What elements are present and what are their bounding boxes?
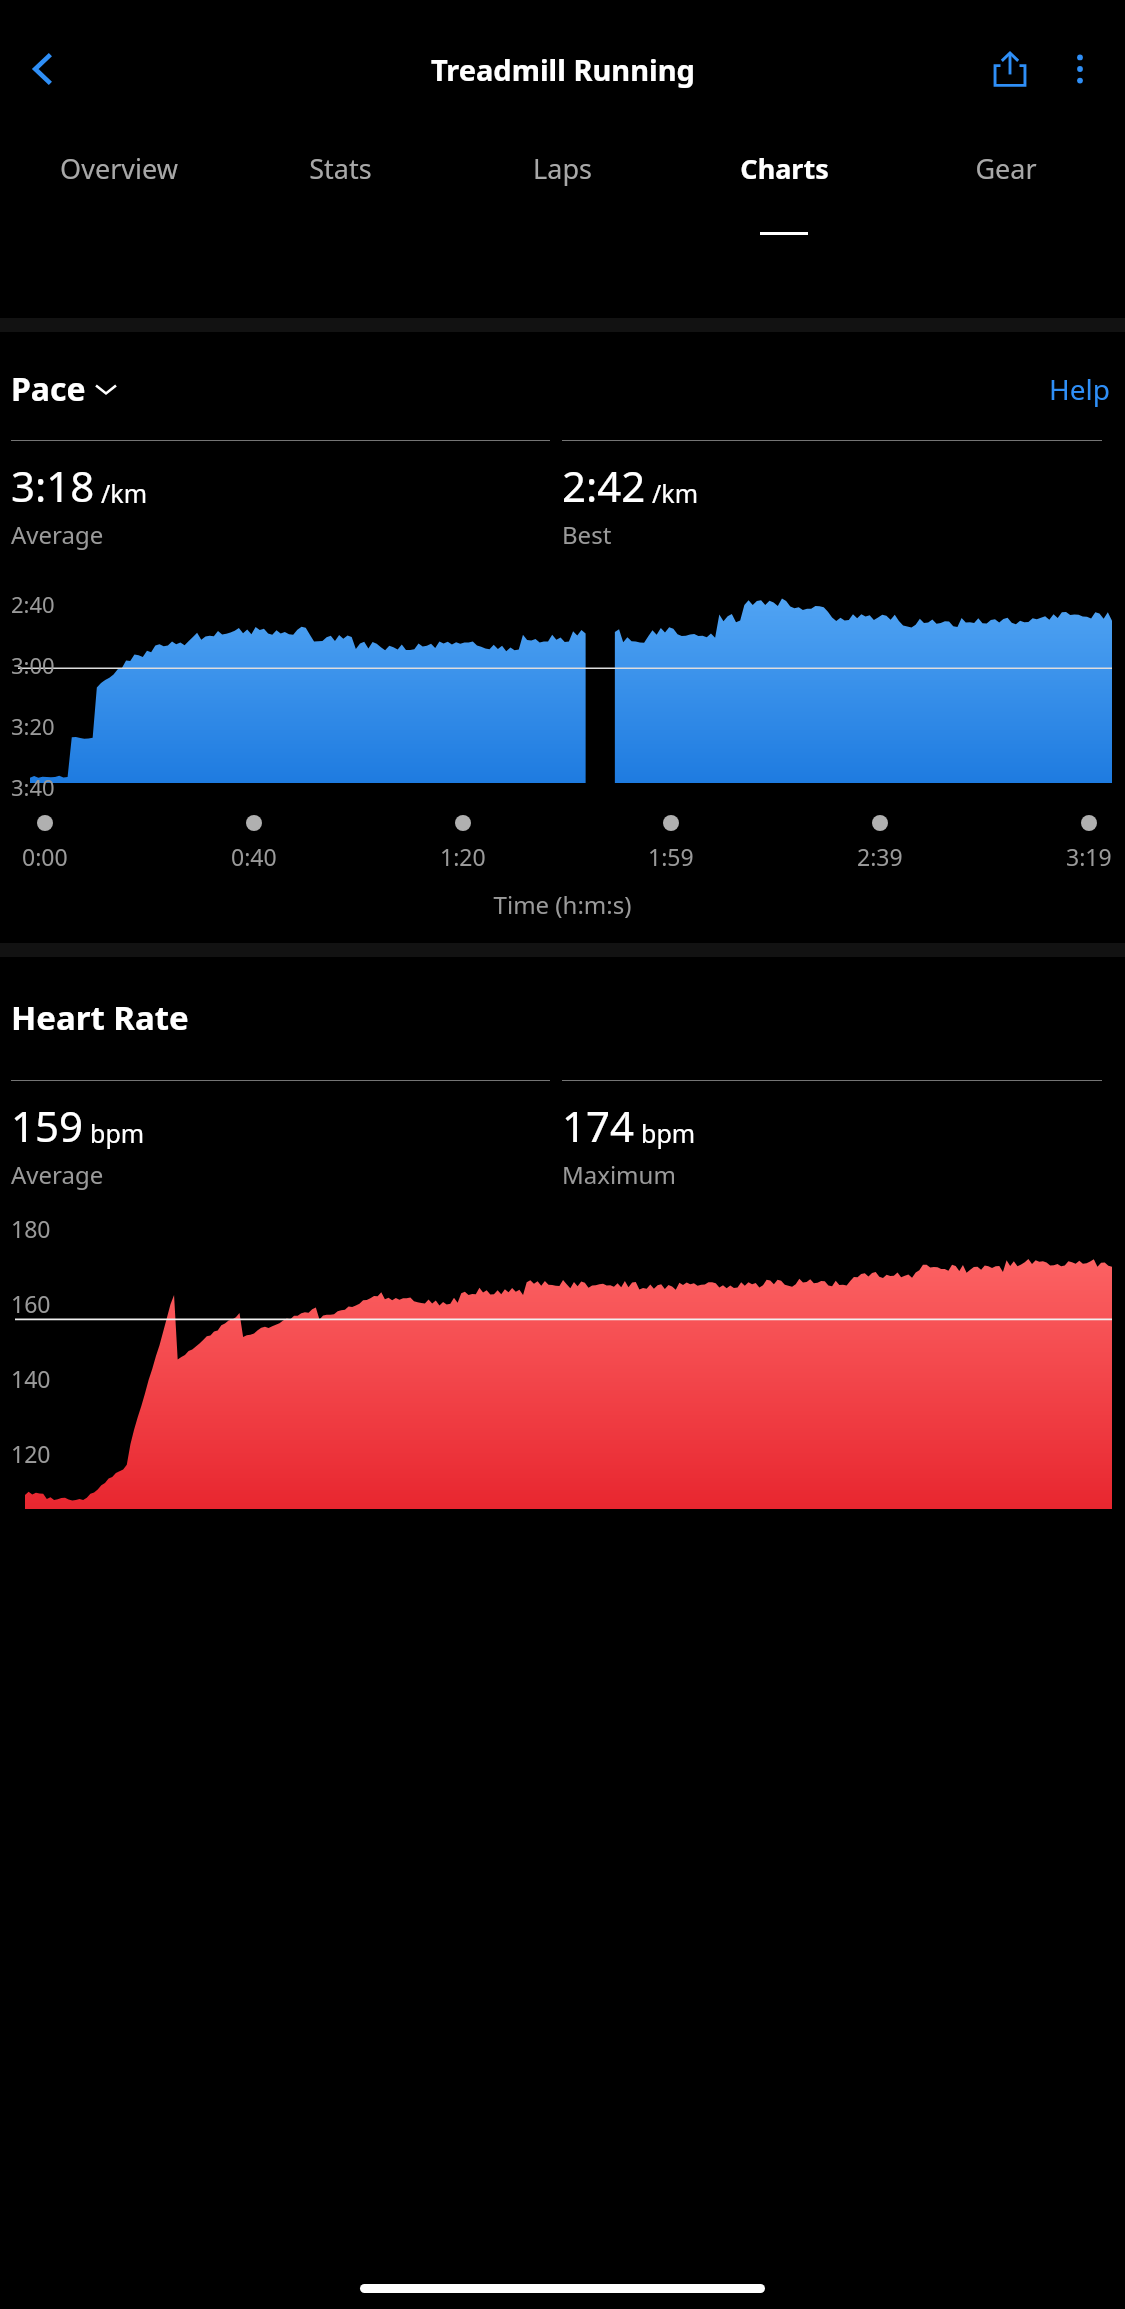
staticText: bpm — [641, 1116, 696, 1150]
button[interactable]: Gear — [895, 150, 1117, 232]
staticText: 3:18 — [11, 457, 95, 514]
staticText: bpm — [90, 1116, 145, 1150]
staticText: Help — [1049, 370, 1110, 408]
staticText: 3:40 — [11, 772, 55, 802]
staticText: Laps — [533, 150, 592, 187]
staticText: Maximum — [562, 1158, 676, 1191]
staticText: 2:39 — [857, 841, 903, 872]
staticText: 0:00 — [22, 841, 68, 872]
staticText: /km — [652, 476, 699, 510]
staticText: Stats — [309, 150, 372, 187]
staticText: Average — [11, 1158, 104, 1191]
button[interactable] — [92, 128, 295, 318]
staticText: 180 — [11, 1213, 51, 1244]
staticText: 2:42 — [562, 457, 646, 514]
staticText: 3:20 — [11, 711, 55, 741]
staticText: 174 — [562, 1097, 635, 1154]
staticText: Charts — [740, 150, 829, 187]
staticText: Gear — [975, 150, 1037, 187]
staticText: 3:19 — [1066, 841, 1112, 872]
button[interactable] — [154, 128, 357, 318]
staticText: 159 — [11, 1097, 84, 1154]
staticText: Treadmill Running — [431, 50, 695, 89]
button[interactable]: Overview — [8, 150, 229, 232]
staticText: 160 — [11, 1288, 51, 1319]
staticText: /km — [101, 476, 148, 510]
staticText: Heart Rate — [11, 995, 189, 1040]
button[interactable]: Laps — [451, 150, 673, 232]
staticText: 120 — [11, 1438, 51, 1469]
button[interactable]: Stats — [229, 150, 451, 232]
button[interactable]: Help — [1045, 366, 1114, 412]
staticText: Time (h:m:s) — [0, 888, 1125, 921]
staticText: 2:40 — [11, 589, 55, 619]
staticText: Best — [562, 518, 612, 551]
button[interactable]: More options — [1045, 34, 1115, 104]
staticText: 140 — [11, 1363, 51, 1394]
button[interactable] — [302, 128, 505, 318]
button[interactable]: Back — [8, 33, 80, 105]
staticText: Overview — [60, 150, 178, 187]
staticText: 1:20 — [440, 841, 486, 872]
staticText: Pace — [11, 367, 86, 411]
button[interactable]: Charts — [673, 150, 895, 235]
button[interactable]: Pace — [11, 367, 116, 411]
staticText: 1:59 — [648, 841, 694, 872]
button[interactable] — [4, 128, 263, 318]
button[interactable]: Share — [975, 34, 1045, 104]
staticText: 0:40 — [231, 841, 277, 872]
staticText: 3:00 — [11, 650, 55, 680]
button[interactable] — [225, 128, 428, 318]
staticText: Average — [11, 518, 104, 551]
